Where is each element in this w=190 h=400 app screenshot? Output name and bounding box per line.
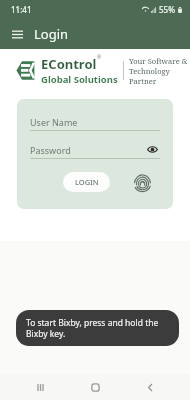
staticText: ® <box>97 54 102 61</box>
staticText: Technology Partner <box>129 66 190 86</box>
staticText: Login <box>34 25 69 43</box>
button[interactable]: LOGIN <box>63 172 110 192</box>
button[interactable]: Back <box>135 374 165 400</box>
button[interactable]: Recent apps <box>25 374 55 400</box>
staticText: LOGIN <box>75 177 99 187</box>
staticText: 11:41 <box>11 4 32 15</box>
button[interactable]: To start Bixby, press and hold the Bixby… <box>16 310 179 346</box>
button[interactable]: Sign in with fingerprint <box>130 170 154 194</box>
button[interactable]: Show password <box>145 142 160 157</box>
staticText: Password <box>30 144 71 156</box>
staticText: Global Solutions <box>41 73 118 86</box>
staticText: 55% <box>159 4 175 15</box>
button[interactable]: User Name <box>30 113 160 130</box>
button[interactable]: Password <box>30 141 160 158</box>
staticText: Your Software & <box>129 56 188 66</box>
staticText: To start Bixby, press and hold the Bixby… <box>26 317 169 339</box>
staticText: User Name <box>30 116 78 128</box>
staticText: EControl <box>41 55 97 73</box>
button[interactable]: Open navigation menu <box>6 23 28 45</box>
button[interactable]: Home <box>80 374 110 400</box>
